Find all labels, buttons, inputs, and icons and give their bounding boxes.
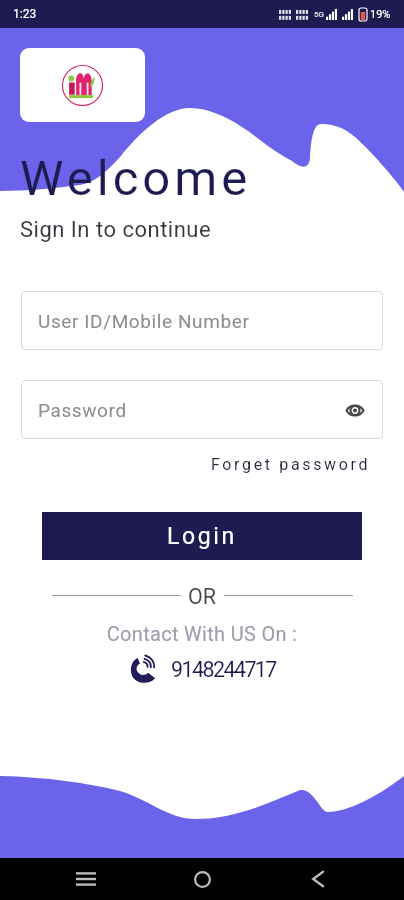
staticText: 9148244717 [171, 657, 276, 682]
staticText: Welcome [20, 150, 252, 207]
staticText: Contact With US On : [0, 622, 404, 645]
button[interactable]: Show password [341, 396, 369, 424]
button[interactable]: Recents [63, 858, 109, 900]
staticText: 1:23 [13, 7, 37, 21]
staticText: OR [188, 584, 217, 606]
staticText: Login [167, 523, 237, 550]
button[interactable]: App logo [20, 48, 145, 122]
button[interactable]: Login [42, 512, 362, 560]
button[interactable]: Back [295, 858, 341, 900]
staticText: User ID/Mobile Number [38, 310, 250, 332]
button[interactable]: User ID/Mobile Number [21, 291, 383, 350]
button[interactable]: Call [0, 654, 404, 684]
staticText: 19% [370, 8, 391, 21]
staticText: 5G [314, 10, 324, 19]
staticText: Forget password [211, 455, 371, 474]
staticText: Sign In to continue [20, 217, 212, 243]
button[interactable]: Home [179, 858, 225, 900]
staticText: Password [38, 399, 127, 421]
other: Call [129, 655, 158, 684]
button[interactable]: Password [21, 380, 383, 439]
button[interactable]: Forget password [0, 450, 404, 478]
